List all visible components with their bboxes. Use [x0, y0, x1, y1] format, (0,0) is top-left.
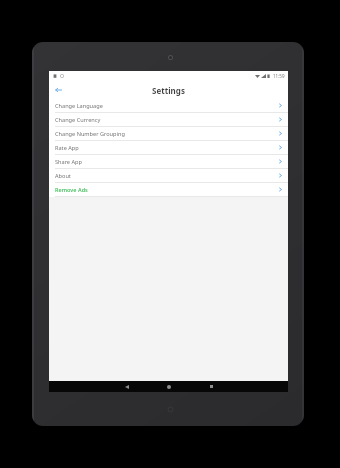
staticText: Change Language	[55, 102, 103, 110]
button[interactable]: Change Language	[49, 99, 288, 113]
staticText: Share App	[55, 158, 82, 166]
button[interactable]: Change Number Grouping	[49, 127, 288, 141]
button[interactable]: Back	[49, 81, 67, 99]
button[interactable]: About	[49, 169, 288, 183]
staticText: About	[55, 172, 71, 180]
staticText: Settings	[152, 85, 185, 96]
button[interactable]: Change Currency	[49, 113, 288, 127]
staticText: Change Currency	[55, 116, 101, 124]
staticText: Remove Ads	[55, 186, 88, 194]
staticText: 11:59	[273, 73, 285, 79]
button[interactable]: Remove Ads	[49, 183, 288, 197]
button[interactable]: Share App	[49, 155, 288, 169]
button[interactable]: Back	[106, 381, 148, 392]
button[interactable]: Recent apps	[190, 381, 232, 392]
button[interactable]: Rate App	[49, 141, 288, 155]
staticText: Change Number Grouping	[55, 130, 125, 138]
staticText: Rate App	[55, 144, 79, 152]
button[interactable]: Home	[148, 381, 190, 392]
